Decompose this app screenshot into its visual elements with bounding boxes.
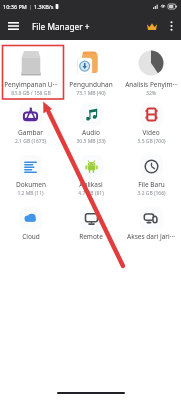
staticText: Analisis Penyim···: [125, 80, 178, 89]
button[interactable]: Aplikasi: [61, 155, 121, 197]
button[interactable]: Penyimpanan U···: [0, 50, 61, 97]
button[interactable]: Gambar: [0, 103, 61, 145]
staticText: Audio: [82, 128, 100, 137]
staticText: 5.5 GB (700): [137, 138, 166, 145]
staticText: Dokumen: [16, 180, 46, 189]
staticText: Aplikasi: [79, 180, 103, 189]
button[interactable]: Open navigation menu: [0, 12, 26, 40]
button[interactable]: Video: [121, 103, 181, 145]
staticText: 32%: [146, 90, 156, 97]
staticText: Akses dari Jari···: [127, 232, 175, 241]
staticText: File Baru: [138, 180, 165, 189]
button[interactable]: More options: [163, 12, 179, 40]
staticText: 30.5 MB (33): [76, 138, 106, 145]
staticText: Video: [142, 128, 160, 137]
staticText: Pengunduhan: [69, 80, 113, 89]
button[interactable]: Cloud: [0, 207, 61, 241]
staticText: File Manager +: [32, 21, 90, 32]
staticText: Gambar: [18, 128, 43, 137]
staticText: 3.2 GB (166): [137, 190, 166, 197]
staticText: 1.2 MB (11): [17, 190, 44, 197]
button[interactable]: Pengunduhan: [61, 50, 121, 97]
staticText: 83.8 GB / 158 GB: [11, 90, 51, 97]
button[interactable]: Remote: [61, 207, 121, 241]
staticText: 2.1 GB (1673): [15, 138, 46, 145]
staticText: Penyimpanan U···: [4, 80, 58, 89]
staticText: |: [29, 3, 33, 10]
staticText: 10:36 PM: [3, 3, 27, 10]
button[interactable]: File Baru: [121, 155, 181, 197]
staticText: Cloud: [22, 232, 40, 241]
button[interactable]: Dokumen: [0, 155, 61, 197]
button[interactable]: Premium: [141, 12, 163, 40]
staticText: 4.7 GB (81): [78, 190, 104, 197]
staticText: 73.1 MB (40): [76, 90, 106, 97]
button[interactable]: Akses dari Jari···: [121, 207, 181, 241]
button[interactable]: Audio: [61, 103, 121, 145]
staticText: Remote: [79, 232, 103, 241]
staticText: 1.3KB/s: [34, 3, 54, 10]
button[interactable]: Analisis Penyim···: [121, 50, 181, 97]
